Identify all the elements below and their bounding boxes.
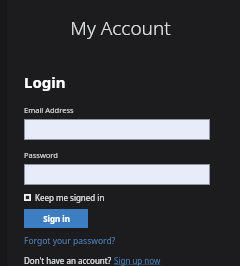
staticText: Forgot your password?: [24, 235, 116, 247]
button[interactable]: Forgot your password?: [24, 235, 116, 247]
staticText: Keep me signed in: [35, 192, 105, 203]
button[interactable]: Sign up now: [114, 255, 161, 266]
button[interactable]: Keep me signed in: [24, 192, 105, 203]
staticText: Email Address: [24, 105, 74, 115]
staticText: Login: [24, 72, 66, 92]
staticText: Password: [24, 150, 58, 160]
staticText: My Account: [70, 15, 171, 41]
staticText: Sign up now: [114, 255, 161, 266]
staticText: Sign in: [43, 213, 70, 224]
button[interactable]: [24, 119, 210, 140]
staticText: Don't have an account?: [24, 255, 114, 266]
button[interactable]: [24, 164, 210, 185]
button[interactable]: Sign in: [24, 209, 88, 228]
